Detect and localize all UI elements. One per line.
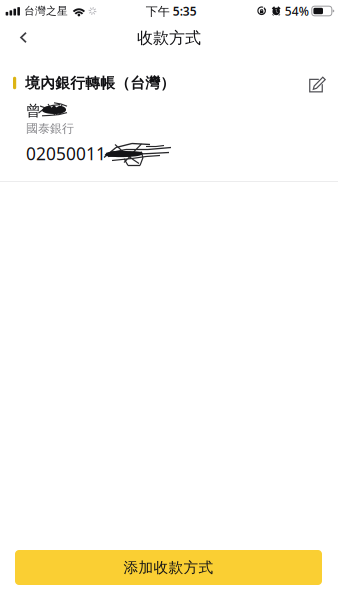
staticText: 境內銀行轉帳（台灣） [25, 74, 175, 92]
staticText: 添加收款方式 [123, 558, 213, 576]
staticText: 台灣之星 [24, 4, 68, 17]
button[interactable]: 添加收款方式 [15, 550, 322, 585]
staticText: 曾 [26, 101, 41, 119]
staticText: 國泰銀行 [26, 121, 74, 136]
staticText: 下午 5:35 [146, 3, 197, 19]
staticText: 02050011 [26, 142, 106, 165]
staticText: 54% [285, 3, 309, 19]
button[interactable]: 返回 [6, 22, 38, 50]
staticText: 收款方式 [137, 28, 201, 48]
button[interactable]: 編輯 [303, 71, 329, 95]
